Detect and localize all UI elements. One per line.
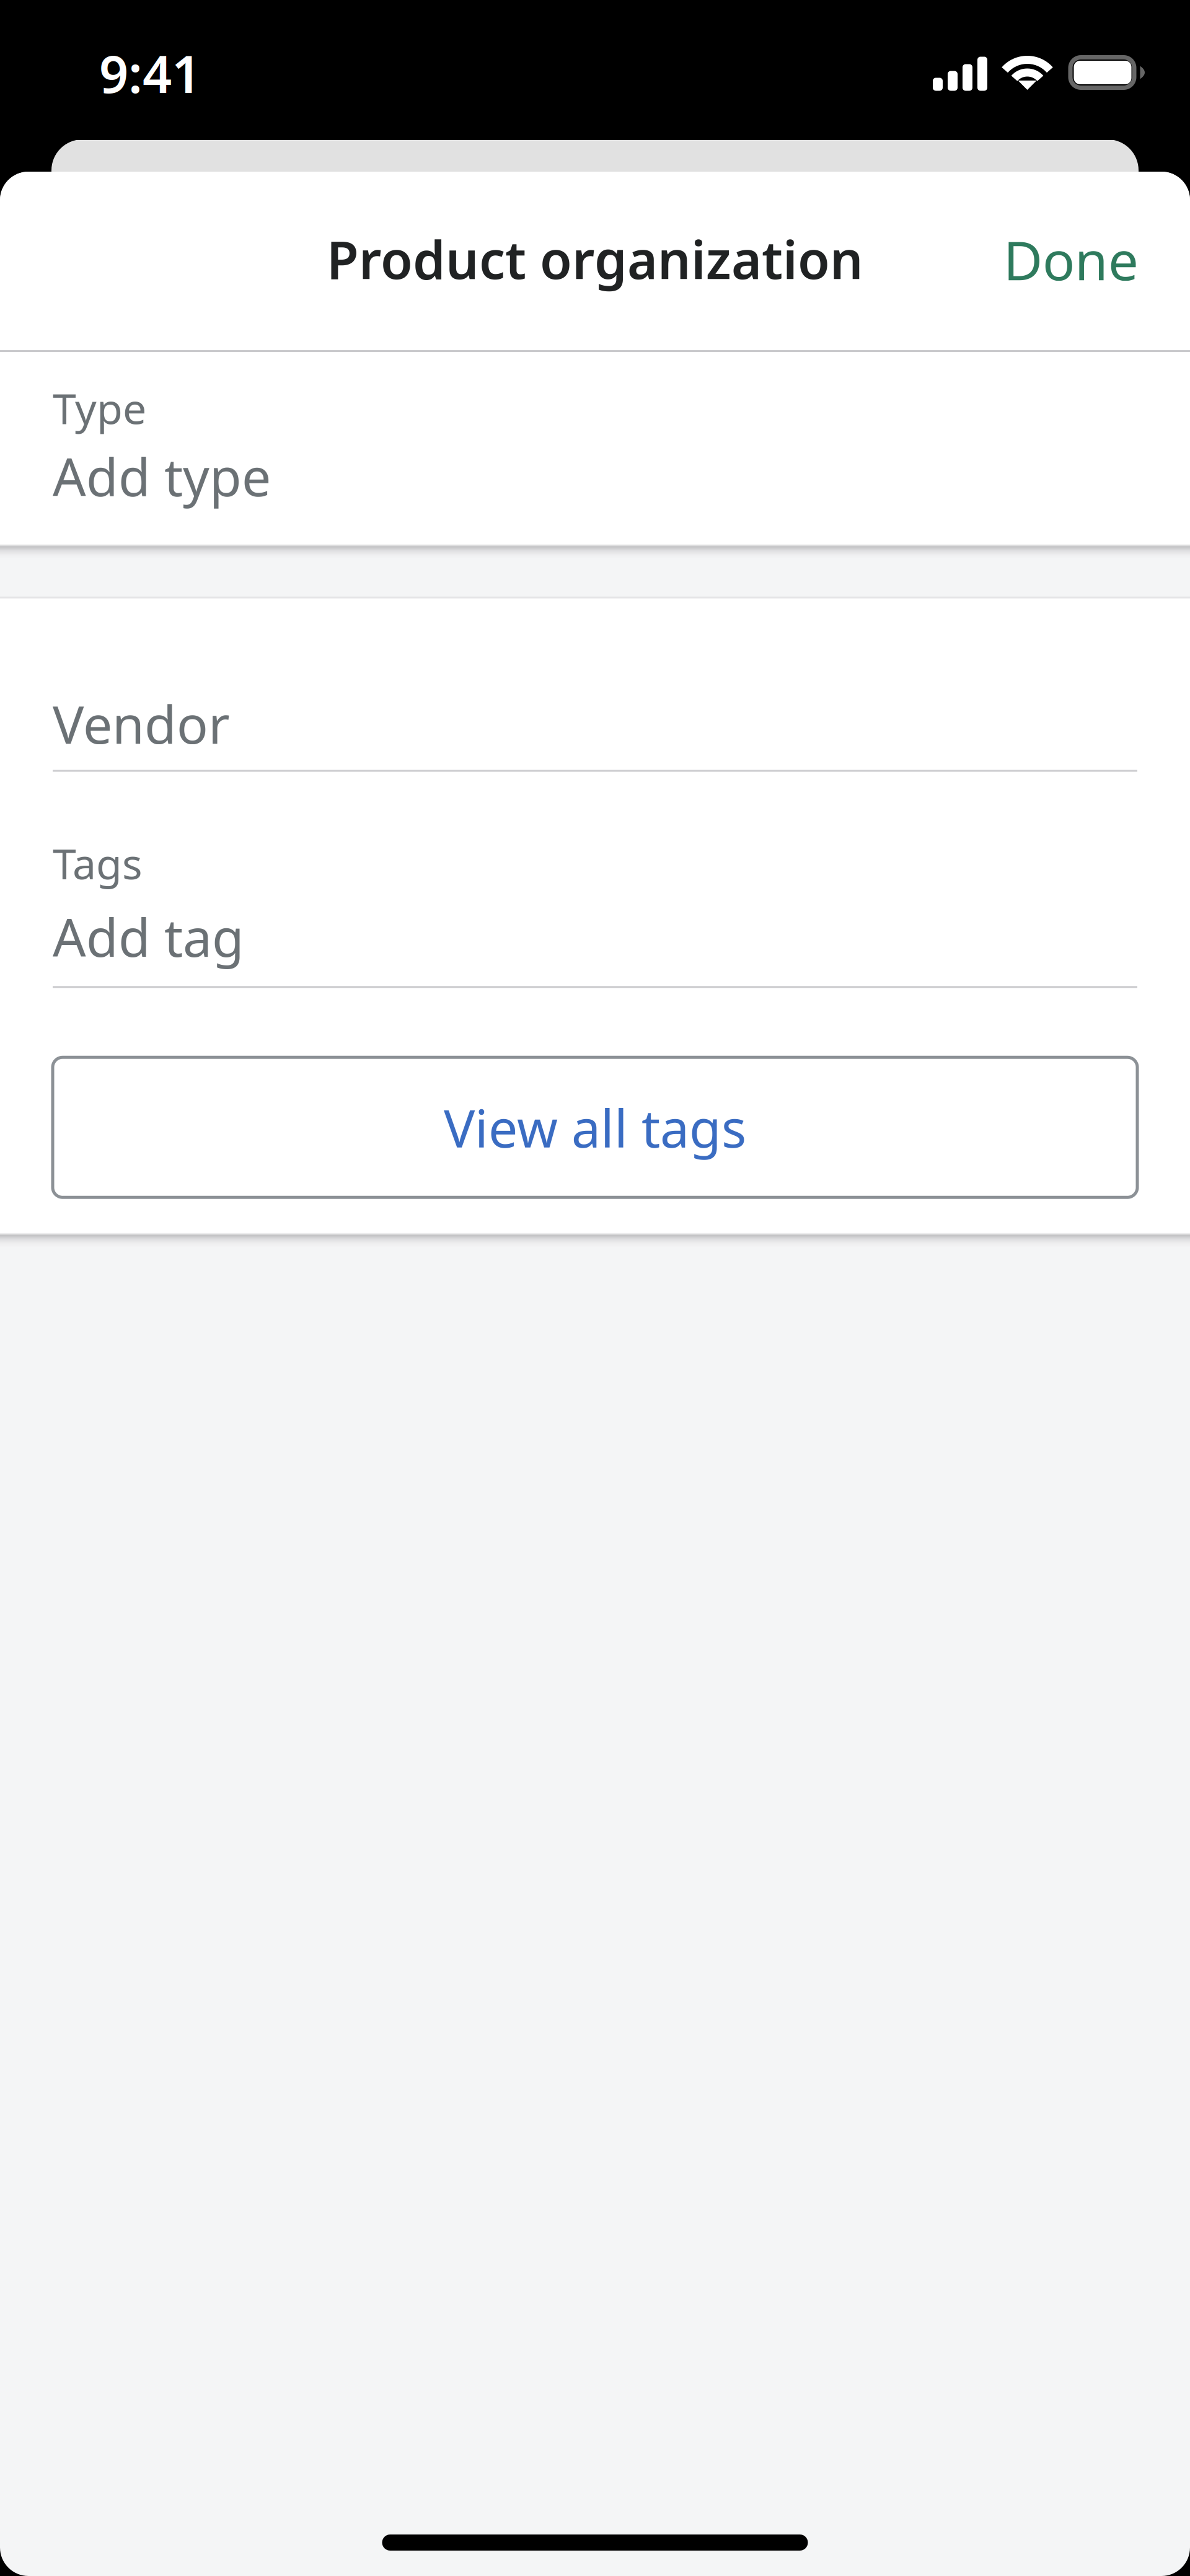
button[interactable]: Tags [53,835,1137,988]
staticText: Add type [53,441,271,510]
staticText: Vendor [53,689,230,758]
staticText: Done [1003,224,1139,295]
button[interactable]: Type [0,352,1190,544]
staticText: View all tags [444,1093,746,1162]
button[interactable]: View all tags [53,1057,1137,1197]
staticText: Tags [53,835,143,891]
staticText: Add tag [53,902,244,971]
staticText: Type [53,380,146,436]
staticText: Product organization [327,224,863,293]
staticText: 9:41 [99,39,201,107]
button[interactable]: Done [966,187,1190,331]
button[interactable]: Vendor [53,689,1137,772]
